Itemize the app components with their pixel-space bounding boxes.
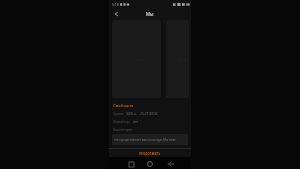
- staticText: 5:18: [112, 2, 119, 7]
- button[interactable]: Главная: [145, 159, 155, 169]
- button[interactable]: Назад: [166, 159, 176, 169]
- staticText: Комментарий: [113, 128, 132, 132]
- staticText: Сроки:: [113, 111, 124, 115]
- staticText: Дизайнер:: [113, 119, 130, 123]
- staticText: ПРОДОЛЖИТЬ: [139, 152, 161, 156]
- staticText: Свободно: [113, 103, 134, 109]
- staticText: 30/6 ч.: [126, 111, 137, 115]
- staticText: это предоставляет вам отличную Мы тоже: [114, 138, 176, 142]
- button[interactable]: это предоставляет вам отличную Мы тоже: [112, 134, 188, 145]
- button[interactable]: ПРОДОЛЖИТЬ: [109, 150, 191, 158]
- button[interactable]: Обзор: [126, 159, 136, 169]
- staticText: нет: [133, 119, 139, 123]
- staticText: Мы: [146, 11, 154, 17]
- button[interactable]: Назад: [112, 10, 120, 18]
- staticText: 25.07.2018: [140, 111, 157, 115]
